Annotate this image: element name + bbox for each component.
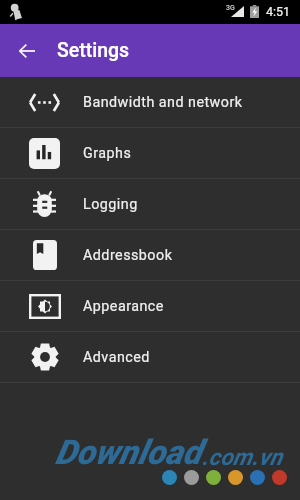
button[interactable]: Appearance — [0, 281, 300, 331]
staticText: Settings — [57, 39, 130, 62]
button[interactable]: Addressbook — [0, 230, 300, 280]
button[interactable]: Logging — [0, 179, 300, 229]
staticText: Graphs — [83, 145, 132, 162]
staticText: Logging — [83, 196, 138, 213]
staticText: .com.vn — [202, 444, 283, 471]
staticText: Advanced — [83, 349, 150, 366]
button[interactable]: Bandwidth and network — [0, 77, 300, 127]
button[interactable]: Graphs — [0, 128, 300, 178]
staticText: Appearance — [83, 298, 164, 315]
staticText: 3G — [226, 4, 235, 12]
staticText: Download — [55, 432, 202, 472]
staticText: 4:51 — [266, 4, 291, 19]
button[interactable]: Advanced — [0, 332, 300, 382]
staticText: Bandwidth and network — [83, 94, 243, 111]
staticText: Addressbook — [83, 247, 173, 264]
button[interactable]: Back — [4, 28, 50, 74]
